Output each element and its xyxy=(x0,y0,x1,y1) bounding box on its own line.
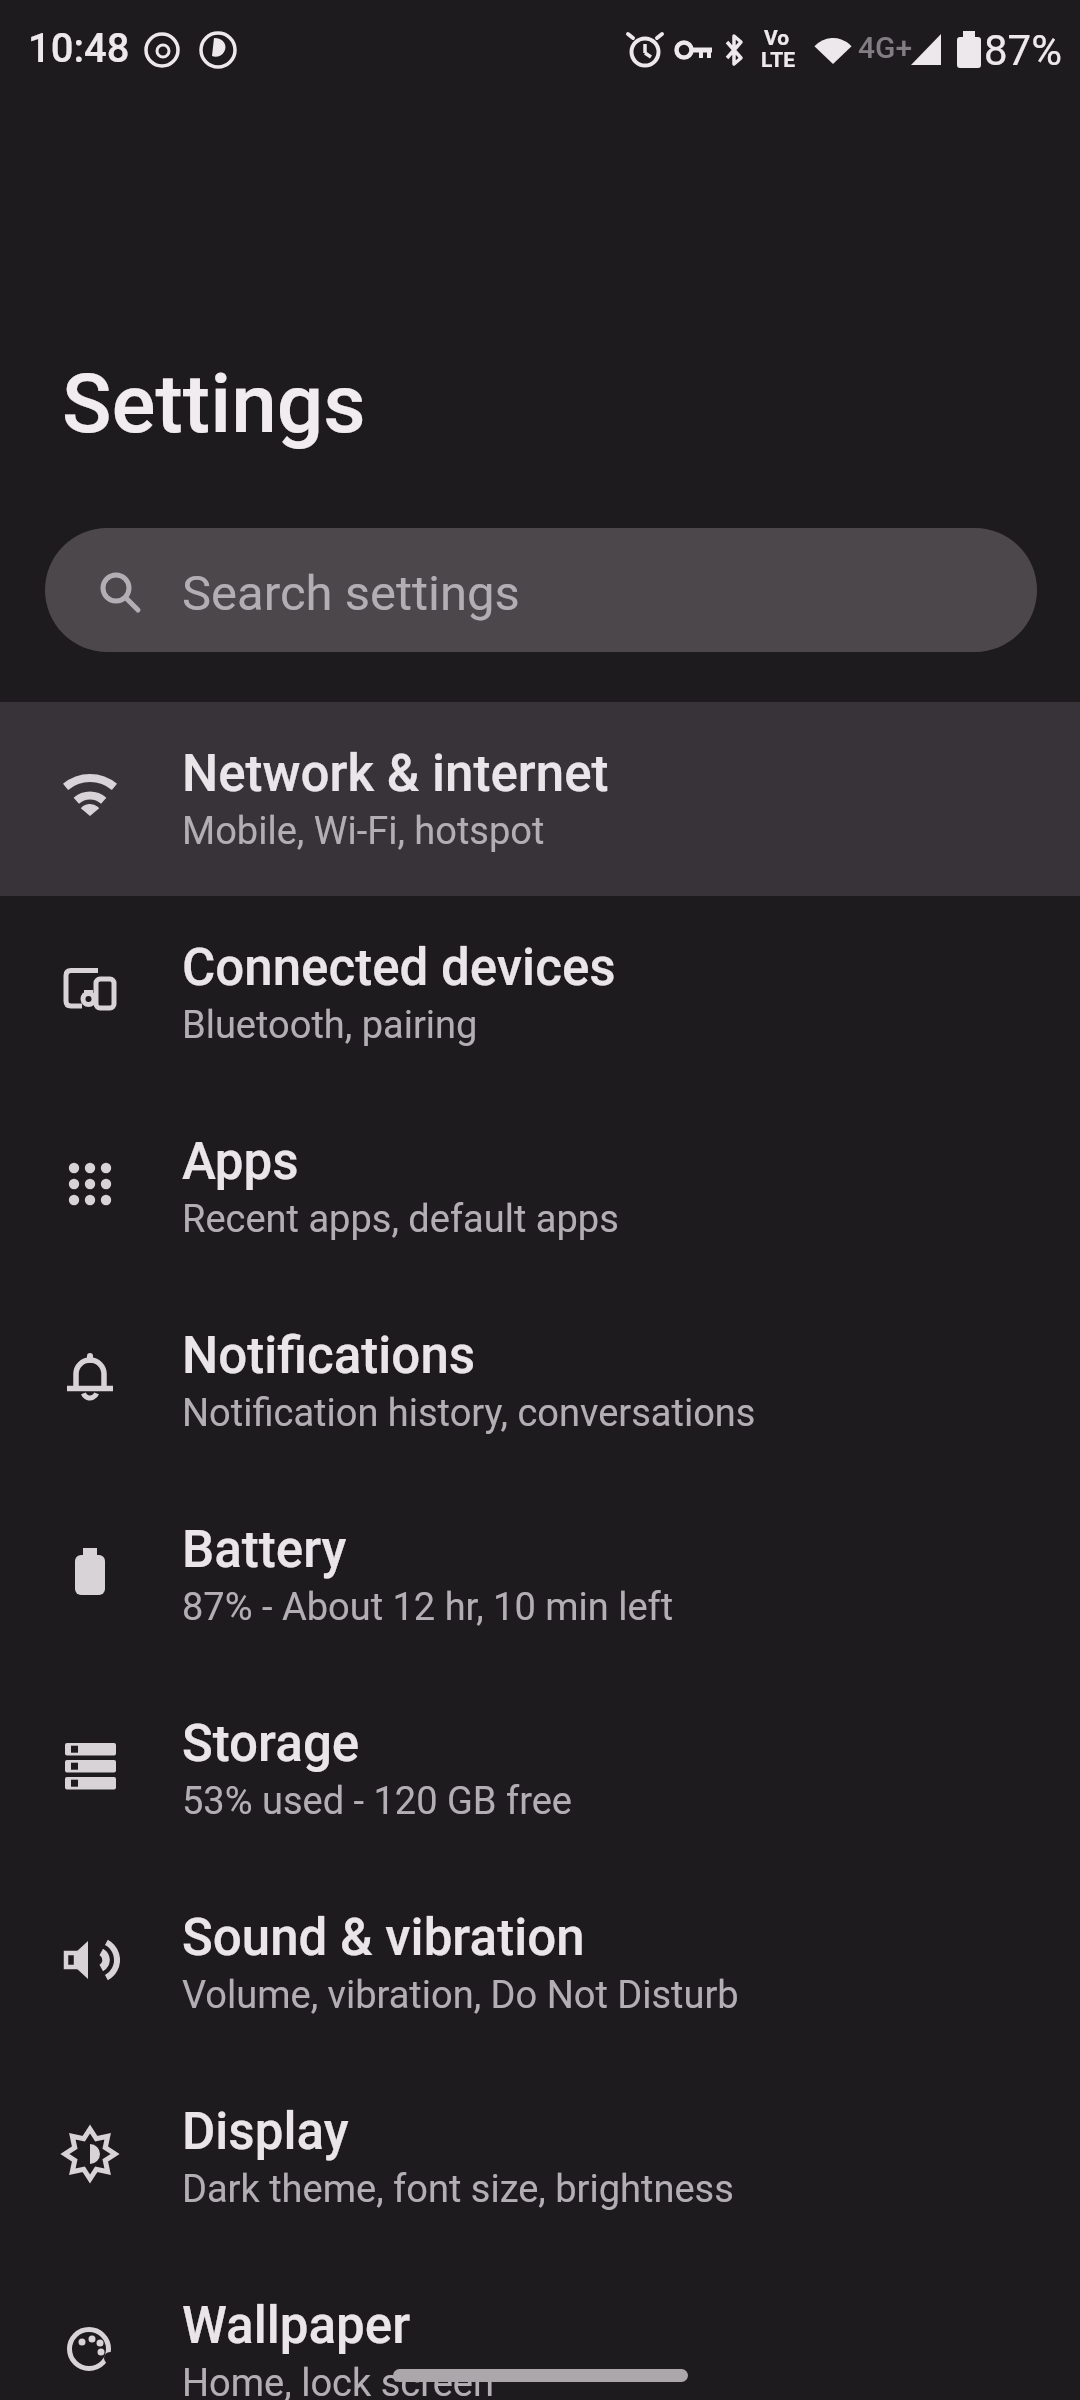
staticText: Notification history, conversations xyxy=(182,1391,756,1436)
button[interactable]: Apps xyxy=(0,1090,1080,1284)
staticText: Settings xyxy=(62,356,366,452)
staticText: LTE xyxy=(761,48,796,73)
staticText: Recent apps, default apps xyxy=(182,1197,619,1242)
staticText: Bluetooth, pairing xyxy=(182,1003,478,1048)
staticText: Mobile, Wi-Fi, hotspot xyxy=(182,809,545,854)
staticText: Dark theme, font size, brightness xyxy=(182,2167,734,2212)
button[interactable]: Display xyxy=(0,2060,1080,2254)
staticText: 87% xyxy=(984,26,1062,75)
staticText: Apps xyxy=(182,1132,299,1192)
button[interactable]: Sound & vibration xyxy=(0,1866,1080,2060)
staticText: Search settings xyxy=(182,565,520,622)
staticText: Home, lock screen xyxy=(182,2361,494,2400)
staticText: Battery xyxy=(182,1520,347,1580)
staticText: Sound & vibration xyxy=(182,1908,585,1968)
staticText: 53% used - 120 GB free xyxy=(182,1779,572,1824)
staticText: 10:48 xyxy=(28,25,130,72)
button[interactable]: Notifications xyxy=(0,1284,1080,1478)
button[interactable]: Wallpaper xyxy=(0,2254,1080,2400)
staticText: Network & internet xyxy=(182,744,609,804)
staticText: Volume, vibration, Do Not Disturb xyxy=(182,1973,739,2018)
staticText: Storage xyxy=(182,1714,360,1774)
button[interactable]: Storage xyxy=(0,1672,1080,1866)
staticText: Notifications xyxy=(182,1326,476,1386)
button[interactable]: Connected devices xyxy=(0,896,1080,1090)
button[interactable]: Battery xyxy=(0,1478,1080,1672)
button[interactable]: Search settings xyxy=(45,528,1037,652)
staticText: 4G+ xyxy=(858,30,913,65)
staticText: Display xyxy=(182,2102,349,2162)
button[interactable]: Network & internet xyxy=(0,702,1080,896)
staticText: 87% - About 12 hr, 10 min left xyxy=(182,1585,674,1630)
staticText: Connected devices xyxy=(182,938,616,998)
staticText: Vo xyxy=(764,26,790,51)
staticText: Wallpaper xyxy=(182,2296,411,2356)
